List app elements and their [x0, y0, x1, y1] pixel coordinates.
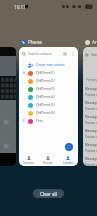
- staticText: Arca: [92, 39, 97, 45]
- staticText: OldPhone(5): [36, 103, 55, 107]
- staticText: OldPhone(4): [36, 95, 55, 99]
- staticText: Preview of the mail: [85, 135, 97, 139]
- staticText: Message subj 2: [85, 101, 97, 105]
- button[interactable]: Clear all: [33, 189, 64, 198]
- staticText: OldPhone(1): [36, 71, 55, 75]
- staticText: Preview of the mail: [85, 93, 97, 97]
- button[interactable]: More options: [71, 52, 75, 56]
- staticText: Message subj 1: [85, 87, 97, 91]
- staticText: Preview of the mail: [85, 121, 97, 125]
- staticText: Preview of the mail: [85, 163, 97, 166]
- button[interactable]: Favorites: [19, 154, 38, 166]
- staticText: Message subj 3: [85, 115, 97, 119]
- staticText: Message subj 5: [85, 143, 97, 147]
- button[interactable]: OldPhone(6): [19, 109, 78, 117]
- staticText: OldPhone(6): [36, 111, 55, 115]
- button[interactable]: OldPhone(4): [19, 93, 78, 101]
- button[interactable]: Contacts: [58, 154, 78, 166]
- staticText: P: [23, 119, 25, 123]
- button[interactable]: OldPhone(5): [19, 101, 78, 109]
- button[interactable]: OldPhone(3): [19, 85, 78, 93]
- button[interactable]: Search in mail: [83, 47, 97, 166]
- staticText: OldPhone(3): [36, 87, 55, 91]
- staticText: Pete: [36, 119, 43, 123]
- staticText: Contacts: [63, 161, 74, 165]
- staticText: Preview of the mail: [85, 107, 97, 111]
- staticText: Preview of the mail: [85, 149, 97, 153]
- staticText: Message subj 4: [85, 129, 97, 133]
- button[interactable]: P: [19, 117, 78, 125]
- staticText: Primary: [86, 78, 97, 82]
- staticText: Phone: [28, 39, 42, 45]
- button[interactable]: [0, 47, 16, 166]
- button[interactable]: A: [19, 69, 78, 77]
- staticText: Recents: [43, 161, 53, 165]
- staticText: OldPhone(2): [36, 79, 55, 83]
- staticText: Create new contact: [36, 63, 65, 67]
- staticText: Favorites: [23, 161, 35, 165]
- button[interactable]: OldPhone(2): [19, 77, 78, 85]
- button[interactable]: Recents: [38, 154, 58, 166]
- staticText: Search contacts: [28, 52, 52, 56]
- button[interactable]: Search contacts: [19, 47, 78, 166]
- staticText: A: [23, 71, 25, 75]
- button[interactable]: Account: [63, 52, 67, 56]
- staticText: 10:17: [14, 4, 26, 10]
- staticText: Search in mail: [91, 53, 97, 57]
- button[interactable]: Create new contact: [19, 61, 78, 69]
- button[interactable]: Search contacts: [19, 49, 78, 59]
- staticText: Message subj 6: [85, 157, 97, 161]
- staticText: Clear all: [40, 191, 57, 197]
- button[interactable]: Dial pad: [65, 143, 73, 151]
